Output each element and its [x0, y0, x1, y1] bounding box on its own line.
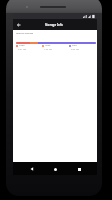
button[interactable]: Recents: [74, 164, 84, 174]
button[interactable]: Home: [50, 164, 60, 174]
button[interactable]: Back: [27, 164, 37, 174]
staticText: Free: [72, 44, 77, 47]
button[interactable]: Apps: [42, 44, 69, 52]
staticText: Apps: [45, 44, 51, 47]
staticText: Storage Info: [45, 23, 63, 27]
staticText: 2.81 GB: [18, 48, 26, 51]
staticText: 9.94 GB: [71, 48, 79, 51]
button[interactable]: Used: [16, 44, 42, 52]
staticText: 1.25 GB: [44, 48, 52, 51]
staticText: Used: [19, 44, 25, 47]
button[interactable]: Back: [13, 19, 24, 30]
staticText: Internal Storage: [16, 32, 34, 35]
button[interactable]: Free: [69, 44, 96, 52]
